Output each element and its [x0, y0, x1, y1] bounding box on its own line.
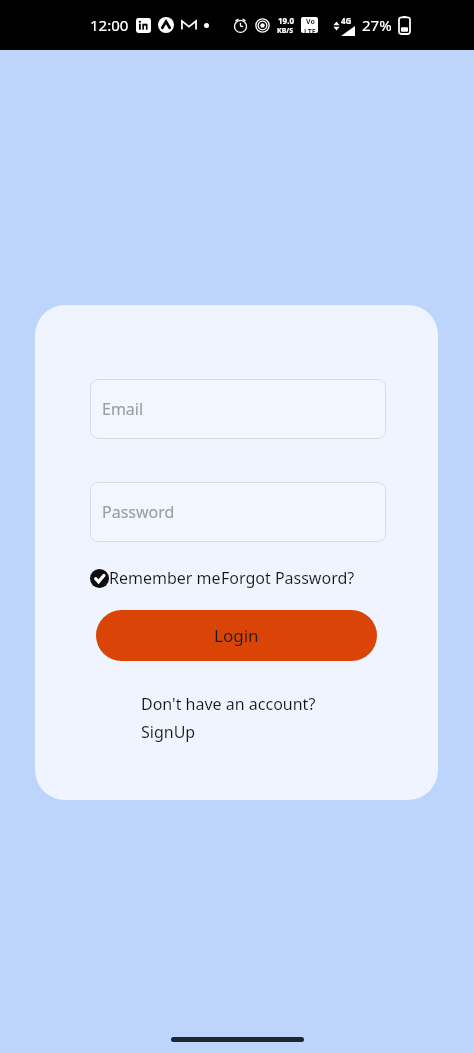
staticText: LTE: [304, 27, 316, 33]
button[interactable]: Password: [90, 482, 386, 542]
button[interactable]: Remember me: [90, 567, 221, 589]
staticText: 27%: [362, 15, 392, 35]
staticText: Login: [214, 624, 259, 647]
staticText: Forgot Password?: [221, 567, 355, 589]
staticText: Don't have an account?: [141, 693, 316, 715]
staticText: 19.0: [278, 15, 294, 26]
staticText: 12:00: [90, 15, 129, 35]
staticText: Remember me: [109, 567, 221, 589]
staticText: Password: [102, 501, 175, 523]
button[interactable]: Email: [90, 379, 386, 439]
staticText: SignUp: [141, 721, 196, 743]
button[interactable]: Forgot Password?: [221, 567, 355, 589]
staticText: 4G: [341, 15, 352, 26]
button[interactable]: SignUp: [141, 721, 196, 743]
staticText: KB/S: [277, 26, 294, 36]
staticText: Vo: [306, 17, 315, 27]
staticText: Email: [102, 398, 144, 420]
button[interactable]: Login: [96, 610, 377, 661]
